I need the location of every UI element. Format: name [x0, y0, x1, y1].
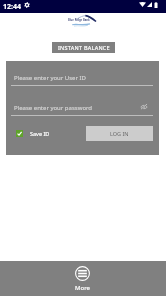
button[interactable]: LOG IN: [86, 126, 153, 141]
other: More: [75, 266, 90, 281]
staticText: Please enter your User ID: [14, 74, 86, 82]
staticText: INSTANT BALANCE: [58, 44, 110, 51]
button[interactable]: More: [68, 263, 97, 292]
other: Settings: [24, 2, 30, 8]
staticText: Please enter your password: [14, 104, 93, 112]
staticText: More: [68, 284, 97, 292]
staticText: 12:44: [3, 2, 21, 12]
staticText: LOG IN: [110, 130, 129, 137]
staticText: Save ID: [30, 130, 50, 137]
button[interactable]: INSTANT BALANCE: [52, 42, 115, 53]
button[interactable]: Save ID: [16, 130, 50, 137]
staticText: Blue Ridge Bank: [68, 18, 90, 22]
button[interactable]: Show password: [140, 103, 148, 110]
